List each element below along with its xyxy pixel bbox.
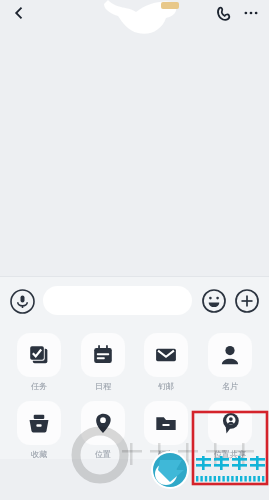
button[interactable]: More functions	[232, 286, 262, 316]
button[interactable]: Emoji	[199, 286, 229, 316]
staticText: 位置共享	[214, 449, 246, 459]
button[interactable]: 位置共享	[201, 401, 259, 459]
button[interactable]: 收藏	[10, 401, 68, 459]
button[interactable]: Call	[209, 0, 237, 26]
button[interactable]: More options	[237, 0, 265, 26]
button[interactable]: Voice message	[7, 286, 37, 316]
button[interactable]: Back	[4, 0, 34, 26]
staticText: 位置	[95, 449, 111, 459]
button[interactable]: 任务	[10, 333, 68, 391]
button[interactable]: 日程	[74, 333, 132, 391]
staticText: 名片	[222, 381, 238, 391]
button[interactable]: 钉邮	[137, 333, 195, 391]
staticText: 钉邮	[158, 381, 174, 391]
staticText: 钉盘	[158, 449, 174, 459]
button[interactable]: 钉盘	[137, 401, 195, 459]
staticText: 任务	[31, 381, 47, 391]
staticText: 日程	[95, 381, 111, 391]
button[interactable]: 位置	[74, 401, 132, 459]
staticText: 收藏	[31, 449, 47, 459]
button[interactable]: 名片	[201, 333, 259, 391]
